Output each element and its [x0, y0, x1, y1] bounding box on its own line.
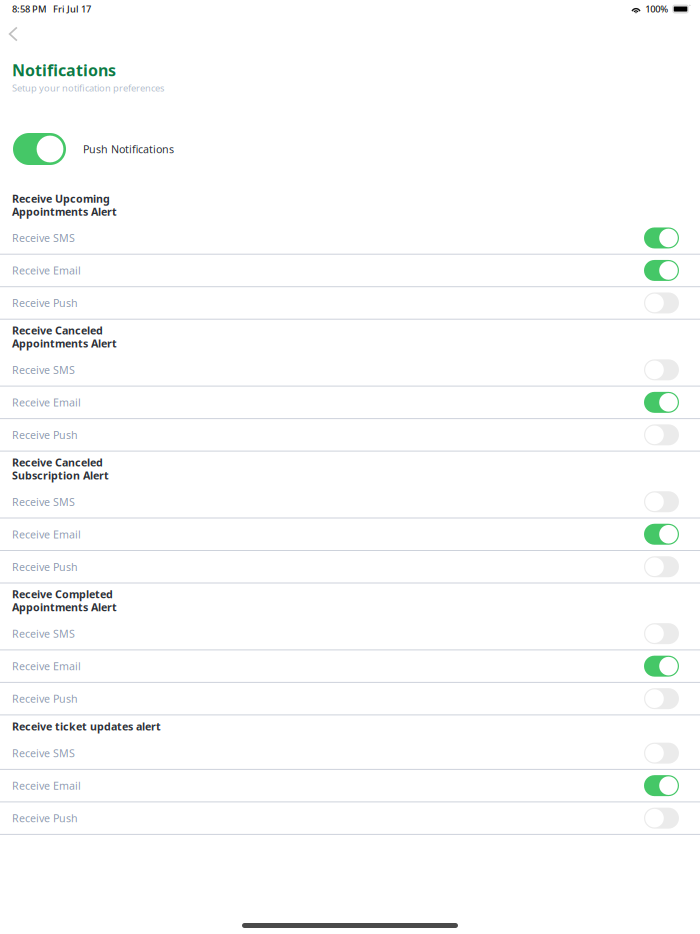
- button[interactable]: Receive SMS: [0, 222, 700, 254]
- staticText: Receive Email: [12, 659, 81, 673]
- staticText: Receive Push: [12, 428, 78, 442]
- button[interactable]: Receive Push: [0, 419, 700, 451]
- button[interactable]: Receive SMS: [0, 354, 700, 386]
- staticText: Receive Email: [12, 395, 81, 409]
- staticText: Fri Jul 17: [53, 3, 91, 15]
- staticText: Receive SMS: [12, 746, 75, 760]
- staticText: Receive Push: [12, 692, 78, 706]
- button[interactable]: Receive Email: [0, 255, 700, 286]
- staticText: Receive Email: [12, 779, 81, 793]
- button[interactable]: Receive Push: [0, 551, 700, 582]
- staticText: Receive Email: [12, 263, 81, 278]
- staticText: Appointments Alert: [12, 336, 117, 350]
- staticText: Receive Canceled: [12, 455, 103, 469]
- staticText: Receive Completed: [12, 587, 113, 601]
- button[interactable]: Receive Email: [0, 650, 700, 682]
- staticText: Appointments Alert: [12, 600, 117, 614]
- button[interactable]: Receive SMS: [0, 486, 700, 517]
- button[interactable]: Receive Push: [0, 802, 700, 834]
- staticText: Receive ticket updates alert: [12, 719, 161, 733]
- staticText: Receive Upcoming: [12, 191, 110, 206]
- button[interactable]: Receive Email: [0, 518, 700, 550]
- staticText: Push Notifications: [83, 142, 174, 156]
- button[interactable]: Receive SMS: [0, 737, 700, 769]
- staticText: Subscription Alert: [12, 468, 109, 482]
- staticText: Receive Push: [12, 811, 78, 825]
- button[interactable]: Receive Push: [0, 287, 700, 319]
- staticText: Receive SMS: [12, 231, 75, 245]
- staticText: 8:58 PM: [12, 3, 47, 15]
- staticText: Receive Push: [12, 560, 78, 574]
- staticText: Receive SMS: [12, 363, 75, 377]
- staticText: Appointments Alert: [12, 204, 117, 219]
- button[interactable]: Receive Email: [0, 387, 700, 418]
- button[interactable]: Receive Email: [0, 770, 700, 801]
- staticText: Receive Push: [12, 296, 78, 310]
- staticText: Receive SMS: [12, 495, 75, 509]
- button[interactable]: Back: [0, 18, 26, 50]
- staticText: Receive SMS: [12, 627, 75, 641]
- staticText: Receive Canceled: [12, 323, 103, 337]
- staticText: 100%: [645, 3, 668, 15]
- staticText: Setup your notification preferences: [12, 82, 164, 94]
- button[interactable]: Push Notifications: [0, 133, 700, 165]
- staticText: Notifications: [12, 59, 116, 81]
- staticText: Receive Email: [12, 527, 81, 541]
- button[interactable]: Receive SMS: [0, 618, 700, 649]
- button[interactable]: Receive Push: [0, 683, 700, 714]
